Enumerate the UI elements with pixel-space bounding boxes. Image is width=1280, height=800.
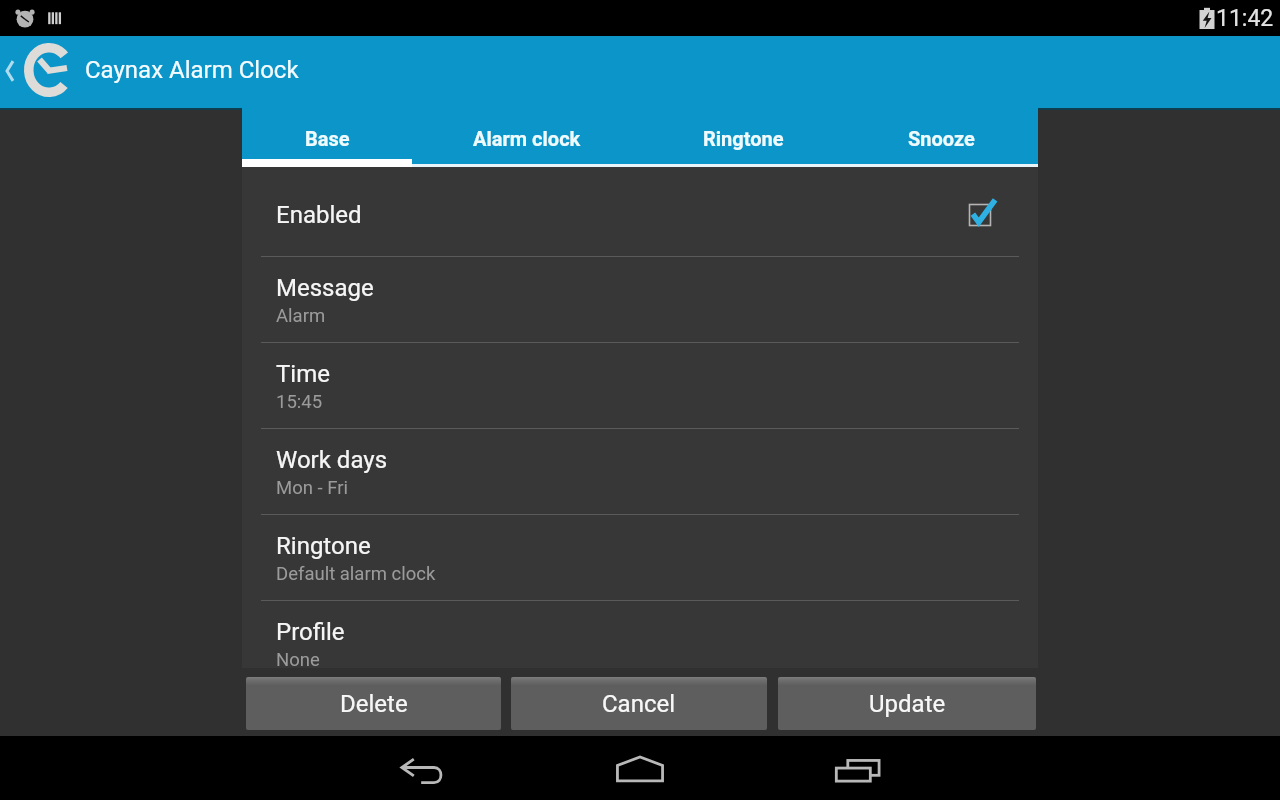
staticText: Base xyxy=(305,127,350,150)
staticText: Default alarm clock xyxy=(276,563,436,585)
staticText: Ringtone xyxy=(703,127,784,150)
button[interactable]: Profile xyxy=(242,600,1038,668)
button[interactable]: Work days xyxy=(242,428,1038,514)
button[interactable]: Time xyxy=(242,342,1038,428)
button[interactable]: Enabled xyxy=(242,167,1038,256)
button[interactable]: Base xyxy=(242,108,412,167)
staticText: 11:42 xyxy=(1216,5,1274,32)
button[interactable]: Alarm clock xyxy=(412,108,641,167)
button[interactable]: Ringtone xyxy=(641,108,845,167)
staticText: Ringtone xyxy=(276,532,371,560)
staticText: Alarm clock xyxy=(473,127,581,150)
staticText: Update xyxy=(869,690,946,718)
staticText: Work days xyxy=(276,446,388,474)
staticText: Snooze xyxy=(908,127,975,150)
button[interactable]: Enabled toggle xyxy=(964,195,998,229)
staticText: Enabled xyxy=(276,201,362,229)
button[interactable]: Message xyxy=(242,256,1038,342)
button[interactable]: Back xyxy=(358,740,488,800)
staticText: Mon - Fri xyxy=(276,477,348,499)
button[interactable]: Ringtone xyxy=(242,514,1038,600)
staticText: 15:45 xyxy=(276,391,323,413)
staticText: Time xyxy=(276,360,330,388)
staticText: Alarm xyxy=(276,305,326,327)
button[interactable]: Home xyxy=(575,737,705,800)
button[interactable]: Update xyxy=(778,677,1036,730)
staticText: Profile xyxy=(276,618,345,646)
staticText: Cancel xyxy=(602,690,676,718)
button[interactable]: Delete xyxy=(246,677,501,730)
staticText: Caynax Alarm Clock xyxy=(85,56,299,84)
button[interactable]: Navigate up xyxy=(0,37,20,109)
button[interactable]: Snooze xyxy=(845,108,1038,167)
staticText: Message xyxy=(276,274,374,302)
button[interactable]: Cancel xyxy=(511,677,767,730)
staticText: None xyxy=(276,649,320,668)
button[interactable]: Recent apps xyxy=(792,739,922,800)
staticText: Delete xyxy=(340,690,408,718)
